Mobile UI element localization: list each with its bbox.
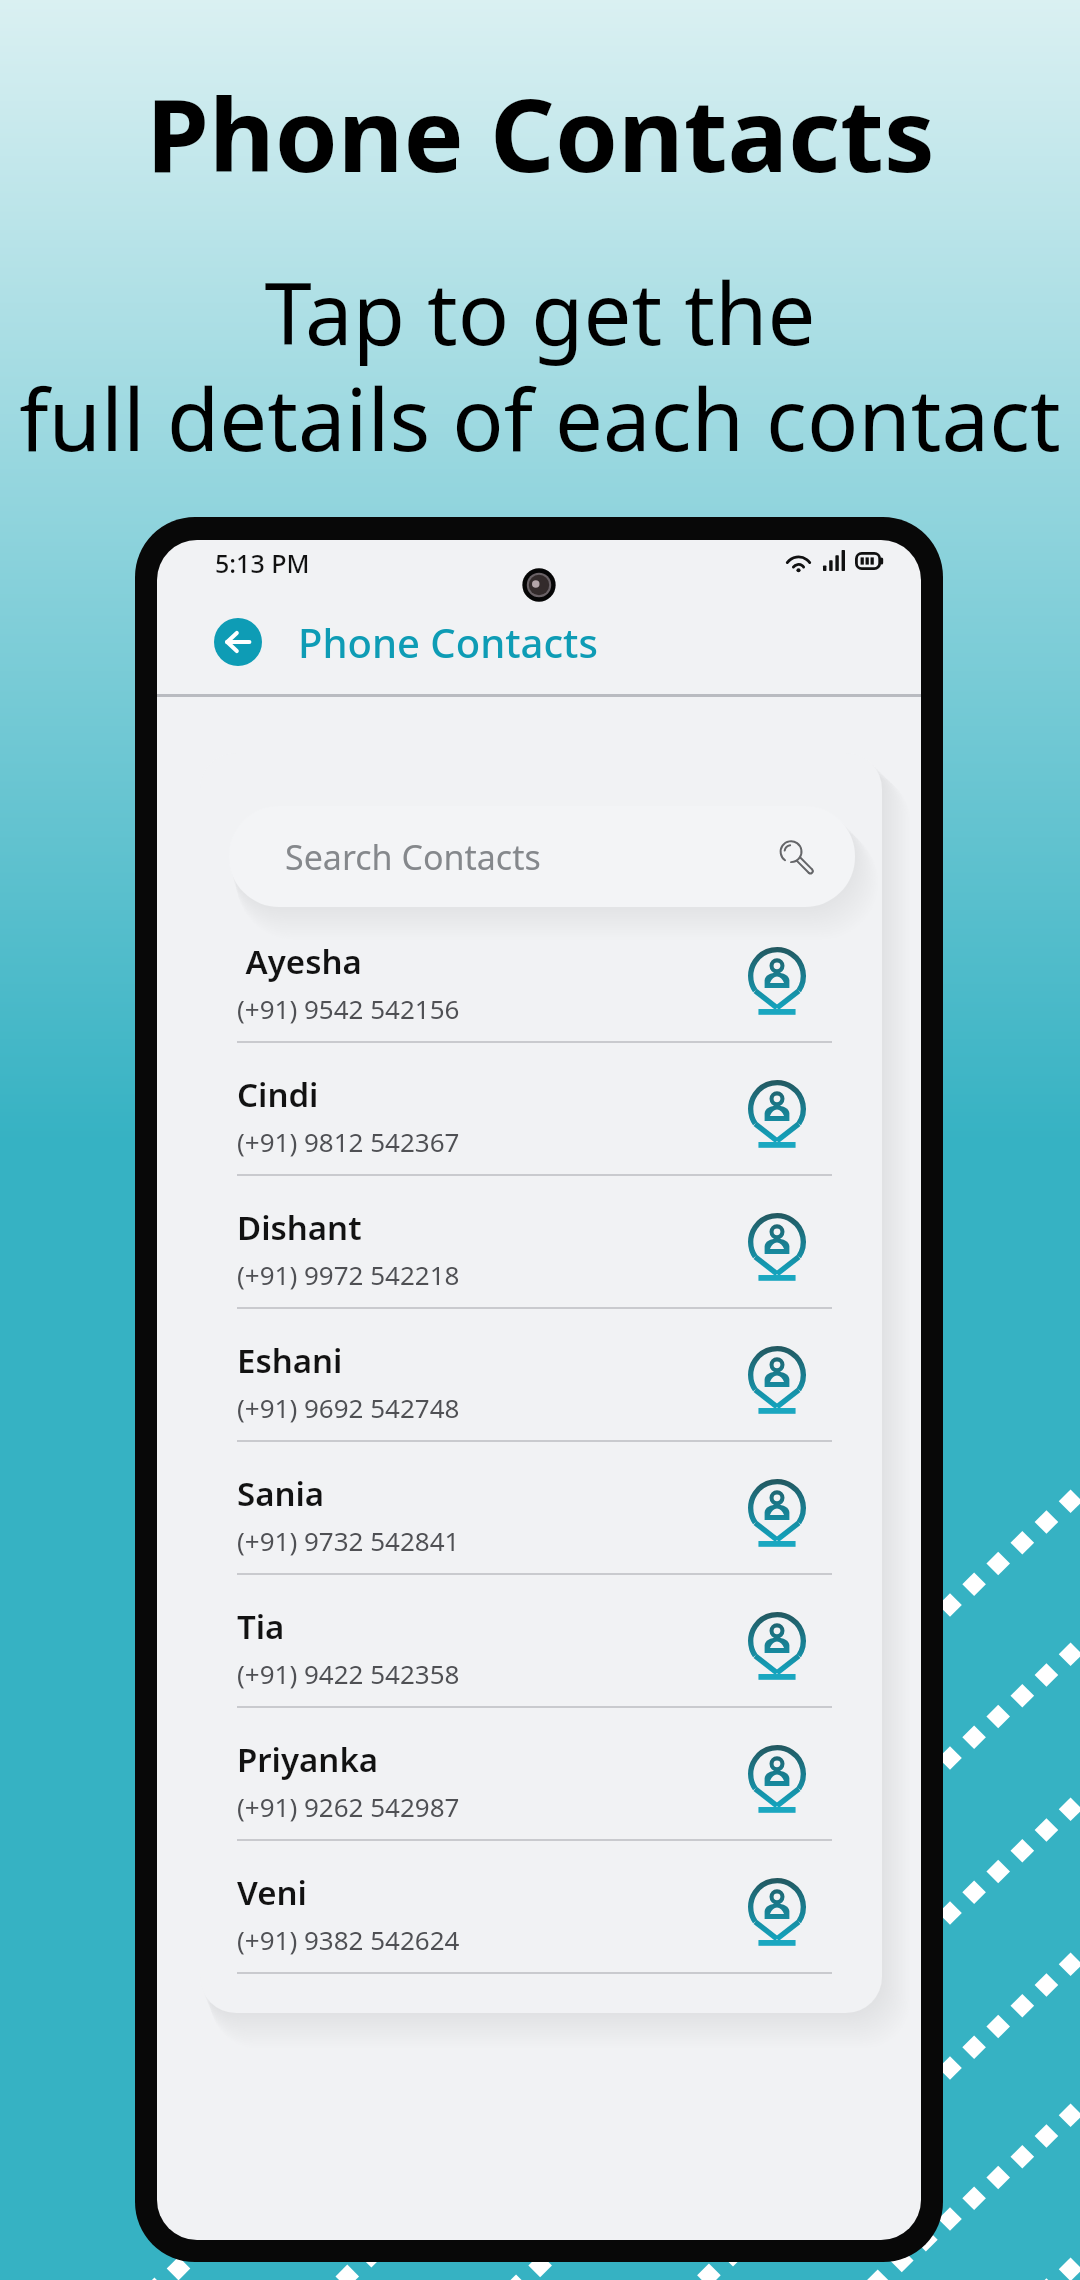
staticText: Search Contacts (285, 834, 541, 880)
staticText: (+91) 9262 542987 (237, 1789, 460, 1824)
staticText: 5:13 PM (215, 546, 310, 580)
staticText: Cindi (237, 1072, 319, 1117)
button[interactable]: Eshani (200, 1309, 882, 1442)
staticText: (+91) 9812 542367 (237, 1124, 460, 1159)
staticText: (+91) 9382 542624 (237, 1922, 460, 1957)
staticText: Phone Contacts (298, 615, 598, 669)
button[interactable]: Search Contacts (229, 806, 855, 907)
staticText: (+91) 9732 542841 (237, 1523, 460, 1558)
button[interactable]: Back (214, 618, 262, 666)
staticText: Tap to get the full details of each cont… (19, 254, 1061, 476)
staticText: (+91) 9422 542358 (237, 1656, 460, 1691)
staticText: Phone Contacts (146, 64, 935, 202)
button[interactable]: Veni (200, 1841, 882, 1974)
staticText: (+91) 9972 542218 (237, 1257, 460, 1292)
button[interactable]: Cindi (200, 1043, 882, 1176)
staticText: Tia (237, 1604, 285, 1649)
staticText: (+91) 9692 542748 (237, 1390, 460, 1425)
staticText: Sania (237, 1471, 325, 1516)
button[interactable]: Tia (200, 1575, 882, 1708)
other: Search (777, 838, 815, 876)
staticText: (+91) 9542 542156 (237, 991, 460, 1026)
button[interactable]: Priyanka (200, 1708, 882, 1841)
staticText: Veni (237, 1870, 307, 1915)
button[interactable]: Ayesha (200, 910, 882, 1043)
other: Camera (522, 568, 556, 602)
staticText: Eshani (237, 1338, 343, 1383)
button[interactable]: Sania (200, 1442, 882, 1575)
staticText: Dishant (237, 1205, 362, 1250)
staticText: Ayesha (237, 939, 362, 984)
button[interactable]: Dishant (200, 1176, 882, 1309)
staticText: Priyanka (237, 1737, 379, 1782)
